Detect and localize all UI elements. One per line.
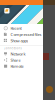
button[interactable]: Share: [0, 57, 43, 63]
button[interactable]: Network: [0, 51, 43, 57]
button[interactable]: Recent: [0, 25, 43, 31]
staticText: Connections: [4, 46, 22, 50]
staticText: Remote: [10, 64, 23, 69]
staticText: Network: [10, 51, 25, 56]
staticText: Share: [10, 57, 20, 63]
button[interactable]: Remote: [0, 63, 43, 69]
button[interactable]: Compressed files: [0, 31, 43, 38]
staticText: Compressed files: [10, 32, 41, 37]
staticText: Recent: [10, 26, 21, 31]
button[interactable]: Show apps: [0, 38, 43, 44]
staticText: Show apps: [10, 38, 28, 43]
